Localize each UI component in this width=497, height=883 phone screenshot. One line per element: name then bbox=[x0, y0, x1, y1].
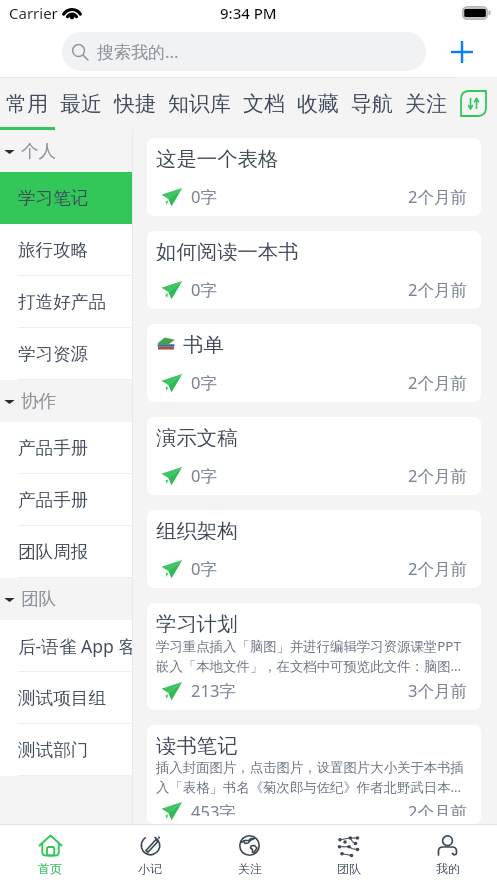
staticText: 0字 bbox=[191, 371, 217, 394]
staticText: 关注 bbox=[238, 861, 262, 876]
staticText: 测试部门 bbox=[18, 739, 89, 761]
button[interactable]: 后-语雀 App 客户 bbox=[0, 620, 132, 672]
staticText: 团队周报 bbox=[18, 541, 89, 563]
staticText: 组织架构 bbox=[156, 518, 238, 540]
button[interactable]: 读书笔记 bbox=[147, 725, 481, 824]
staticText: 0字 bbox=[191, 557, 217, 580]
staticText: 2个月前 bbox=[408, 185, 467, 208]
button[interactable]: 个人 bbox=[0, 130, 132, 172]
staticText: 书单 bbox=[183, 332, 224, 354]
button[interactable]: 测试项目组 bbox=[0, 672, 132, 724]
button[interactable]: 如何阅读一本书 bbox=[147, 231, 481, 309]
staticText: 收藏 bbox=[297, 91, 339, 117]
staticText: 关注 bbox=[405, 91, 447, 117]
staticText: 如何阅读一本书 bbox=[156, 239, 299, 261]
staticText: 小记 bbox=[138, 861, 162, 876]
button[interactable]: 团队周报 bbox=[0, 526, 132, 578]
button[interactable]: 协作 bbox=[0, 380, 132, 422]
button[interactable]: 关注 bbox=[399, 77, 453, 130]
staticText: 搜索我的... bbox=[97, 40, 179, 63]
button[interactable]: 测试部门 bbox=[0, 724, 132, 776]
staticText: 213字 bbox=[191, 679, 236, 702]
button[interactable]: 小记 bbox=[100, 825, 200, 883]
button[interactable]: New document bbox=[426, 26, 497, 77]
button[interactable]: 首页 bbox=[0, 825, 100, 883]
button[interactable]: 文档 bbox=[237, 77, 291, 130]
button[interactable]: 学习笔记 bbox=[0, 172, 132, 224]
staticText: 我的 bbox=[436, 861, 460, 876]
staticText: 测试项目组 bbox=[18, 687, 106, 709]
staticText: 演示文稿 bbox=[156, 425, 238, 447]
button[interactable]: 团队 bbox=[299, 825, 398, 883]
staticText: 2个月前 bbox=[408, 371, 467, 394]
staticText: Carrier bbox=[9, 3, 58, 23]
staticText: 0字 bbox=[191, 185, 217, 208]
staticText: 2个月前 bbox=[408, 464, 467, 487]
button[interactable]: 收藏 bbox=[291, 77, 345, 130]
button[interactable]: 关注 bbox=[200, 825, 299, 883]
staticText: 最近 bbox=[60, 91, 102, 117]
staticText: 快捷 bbox=[114, 91, 156, 117]
staticText: 3个月前 bbox=[408, 679, 467, 702]
staticText: 产品手册 bbox=[18, 489, 89, 511]
staticText: 首页 bbox=[38, 861, 62, 876]
staticText: 团队 bbox=[337, 861, 361, 876]
staticText: 9:34 PM bbox=[220, 3, 277, 23]
staticText: 后-语雀 App 客户 bbox=[18, 634, 132, 658]
button[interactable]: 快捷 bbox=[108, 77, 162, 130]
staticText: 常用 bbox=[6, 91, 48, 117]
button[interactable]: 组织架构 bbox=[147, 510, 481, 588]
staticText: 学习计划 bbox=[156, 611, 238, 633]
staticText: 学习笔记 bbox=[18, 187, 89, 209]
staticText: 知识库 bbox=[168, 91, 231, 117]
button[interactable]: 知识库 bbox=[162, 77, 237, 130]
staticText: 这是一个表格 bbox=[156, 146, 279, 168]
staticText: 0字 bbox=[191, 278, 217, 301]
button[interactable]: 导航 bbox=[345, 77, 399, 130]
button[interactable]: Sort bbox=[461, 91, 486, 116]
staticText: 产品手册 bbox=[18, 437, 89, 459]
staticText: 文档 bbox=[243, 91, 285, 117]
staticText: 0字 bbox=[191, 464, 217, 487]
button[interactable]: 我的 bbox=[398, 825, 497, 883]
button[interactable]: 产品手册 bbox=[0, 474, 132, 526]
button[interactable]: 打造好产品 bbox=[0, 276, 132, 328]
button[interactable]: 演示文稿 bbox=[147, 417, 481, 495]
button[interactable]: 书单 bbox=[147, 324, 481, 402]
button[interactable]: 产品手册 bbox=[0, 422, 132, 474]
button[interactable]: 最近 bbox=[54, 77, 108, 130]
button[interactable]: 旅行攻略 bbox=[0, 224, 132, 276]
staticText: 协作 bbox=[21, 390, 57, 412]
staticText: 学习重点插入「脑图」并进行编辑学习资源课堂PPT嵌入「本地文件」，在文档中可预览… bbox=[156, 637, 467, 675]
staticText: 导航 bbox=[351, 91, 393, 117]
button[interactable]: 常用 bbox=[0, 77, 54, 130]
staticText: 学习资源 bbox=[18, 343, 89, 365]
staticText: 团队 bbox=[21, 588, 57, 610]
staticText: 打造好产品 bbox=[18, 291, 106, 313]
button[interactable]: 搜索我的... bbox=[62, 32, 426, 71]
staticText: 个人 bbox=[21, 140, 57, 162]
button[interactable]: 学习计划 bbox=[147, 603, 481, 710]
button[interactable]: 学习资源 bbox=[0, 328, 132, 380]
staticText: 2个月前 bbox=[408, 557, 467, 580]
staticText: 2个月前 bbox=[408, 278, 467, 301]
staticText: 插入封面图片，点击图片，设置图片大小关于本书插入「表格」书名《菊次郎与佐纪》作者… bbox=[156, 759, 467, 796]
button[interactable]: 团队 bbox=[0, 578, 132, 620]
staticText: 453字 bbox=[191, 800, 236, 816]
staticText: 2个月前 bbox=[408, 800, 467, 816]
staticText: 读书笔记 bbox=[156, 733, 238, 755]
button[interactable]: 这是一个表格 bbox=[147, 138, 481, 216]
staticText: 旅行攻略 bbox=[18, 239, 89, 261]
